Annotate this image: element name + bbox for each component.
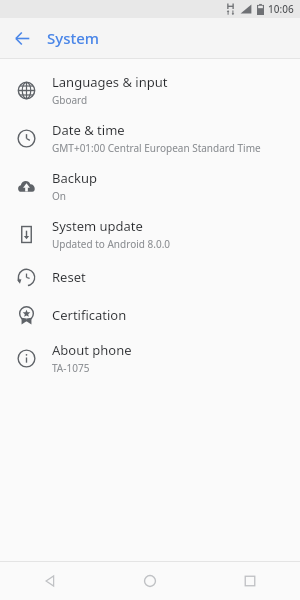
staticText: Reset — [52, 268, 86, 286]
staticText: GMT+01:00 Central European Standard Time — [52, 141, 261, 155]
button[interactable]: Certification — [0, 296, 300, 334]
staticText: TA-1075 — [52, 361, 90, 375]
button[interactable]: Languages & input — [0, 66, 300, 114]
staticText: Gboard — [52, 93, 88, 107]
button[interactable]: System update — [0, 210, 300, 258]
button[interactable]: Recent apps — [200, 562, 300, 600]
button[interactable]: Back — [7, 23, 37, 53]
button[interactable]: Back — [0, 562, 100, 600]
button[interactable]: Reset — [0, 258, 300, 296]
staticText: System — [47, 28, 100, 48]
staticText: 10:06 — [268, 2, 294, 16]
staticText: About phone — [52, 341, 132, 359]
staticText: Date & time — [52, 121, 125, 139]
button[interactable]: Backup — [0, 162, 300, 210]
button[interactable]: About phone — [0, 334, 300, 382]
button[interactable]: Home — [100, 562, 200, 600]
staticText: On — [52, 189, 66, 203]
staticText: System update — [52, 217, 143, 235]
staticText: Updated to Android 8.0.0 — [52, 237, 171, 251]
button[interactable]: Date & time — [0, 114, 300, 162]
staticText: Backup — [52, 169, 97, 187]
staticText: Languages & input — [52, 73, 168, 91]
staticText: Certification — [52, 306, 127, 324]
